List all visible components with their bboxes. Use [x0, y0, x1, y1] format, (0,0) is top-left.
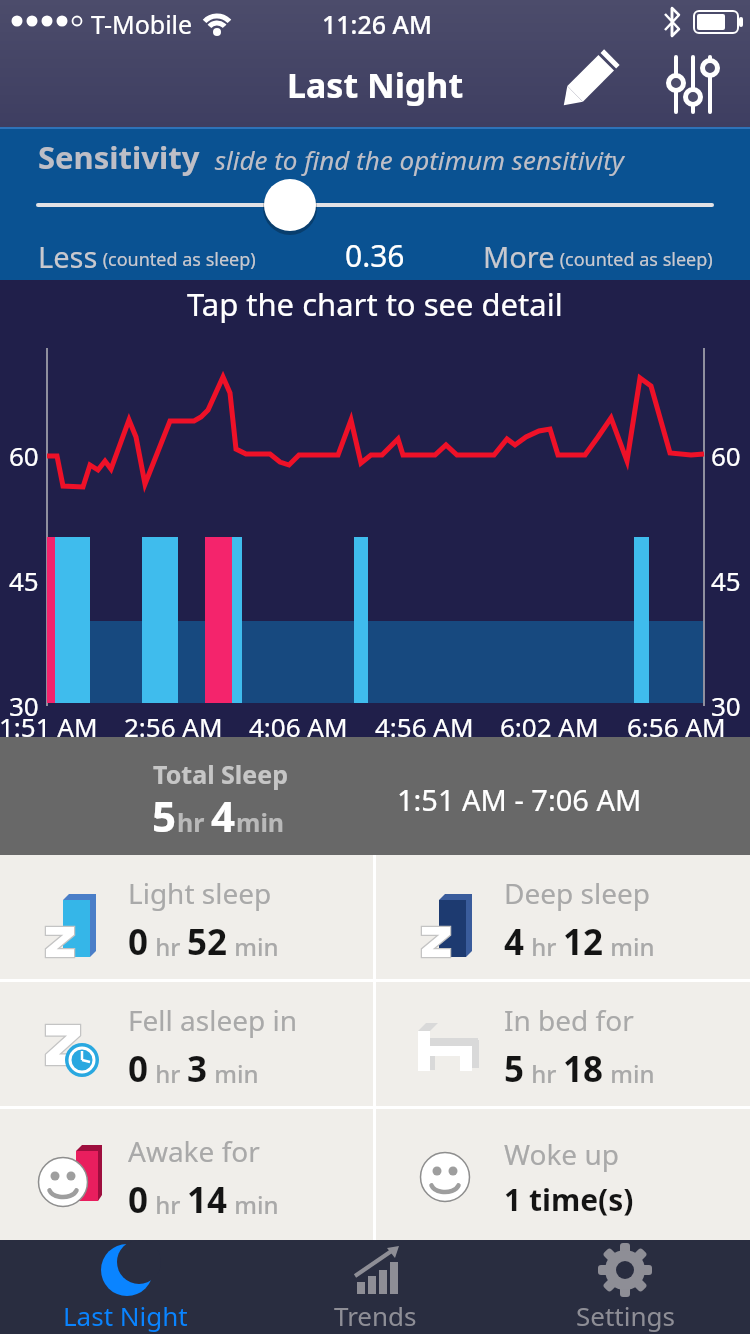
- staticText: 4:06 AM: [249, 709, 348, 744]
- staticText: 4:56 AM: [375, 709, 474, 744]
- staticText: 6:56 AM: [627, 709, 726, 744]
- button[interactable]: In bed for: [376, 982, 750, 1106]
- staticText: 5: [152, 787, 177, 844]
- staticText: min: [604, 1057, 655, 1090]
- staticText: hr: [525, 1057, 563, 1090]
- staticText: 4: [211, 787, 236, 844]
- staticText: Last Night: [63, 1298, 188, 1333]
- staticText: min: [228, 1188, 279, 1221]
- staticText: 14: [187, 1176, 228, 1224]
- staticText: (counted as sleep): [555, 247, 713, 272]
- staticText: Light sleep: [128, 874, 272, 912]
- staticText: Less: [38, 237, 98, 276]
- staticText: Tap the chart to see detail: [187, 283, 563, 325]
- staticText: 3: [187, 1045, 208, 1093]
- button[interactable]: Trends: [250, 1240, 500, 1334]
- staticText: 45: [711, 563, 741, 598]
- staticText: Last Night: [287, 62, 464, 108]
- staticText: 0: [128, 1045, 149, 1093]
- button[interactable]: Woke up: [376, 1109, 750, 1240]
- button[interactable]: Settings: [500, 1240, 750, 1334]
- button[interactable]: [665, 50, 725, 120]
- staticText: hr: [177, 805, 211, 839]
- staticText: 1:51 AM: [0, 709, 98, 744]
- staticText: 52: [187, 918, 228, 966]
- staticText: min: [228, 930, 279, 963]
- staticText: 60: [9, 438, 39, 473]
- button[interactable]: Awake for: [0, 1109, 373, 1240]
- staticText: 0.36: [345, 235, 405, 276]
- button[interactable]: [545, 55, 615, 115]
- staticText: Trends: [334, 1298, 417, 1333]
- staticText: min: [604, 930, 655, 963]
- staticText: hr: [149, 930, 187, 963]
- staticText: (counted as sleep): [98, 247, 256, 272]
- staticText: Awake for: [128, 1132, 260, 1170]
- staticText: T-Mobile: [91, 7, 193, 41]
- button[interactable]: Fell asleep in: [0, 982, 373, 1106]
- staticText: 30: [711, 688, 741, 723]
- staticText: 0: [128, 918, 149, 966]
- staticText: Woke up: [504, 1135, 619, 1173]
- button[interactable]: [240, 153, 340, 253]
- staticText: hr: [149, 1188, 187, 1221]
- button[interactable]: Light sleep: [0, 855, 373, 979]
- staticText: 0: [128, 1176, 149, 1224]
- staticText: 18: [563, 1045, 604, 1093]
- staticText: Fell asleep in: [128, 1001, 298, 1039]
- staticText: 1:51 AM - 7:06 AM: [397, 780, 642, 819]
- staticText: In bed for: [504, 1001, 634, 1039]
- staticText: slide to find the optimum sensitivity: [208, 142, 625, 177]
- staticText: Sensitivity: [38, 136, 200, 178]
- button[interactable]: Tap the chart to see detail: [0, 280, 750, 737]
- staticText: hr: [149, 1057, 187, 1090]
- staticText: 2:56 AM: [124, 709, 223, 744]
- staticText: 6:02 AM: [500, 709, 599, 744]
- button[interactable]: Last Night: [0, 1240, 250, 1334]
- staticText: 45: [9, 563, 39, 598]
- staticText: 11:26 AM: [322, 7, 432, 41]
- staticText: Settings: [576, 1298, 675, 1333]
- button[interactable]: Deep sleep: [376, 855, 750, 979]
- staticText: hr: [525, 930, 563, 963]
- staticText: min: [236, 805, 285, 839]
- staticText: 30: [9, 688, 39, 723]
- staticText: min: [208, 1057, 259, 1090]
- staticText: Deep sleep: [504, 874, 650, 912]
- staticText: 12: [563, 918, 604, 966]
- staticText: 1 time(s): [504, 1179, 634, 1220]
- staticText: Total Sleep: [153, 757, 288, 791]
- staticText: 60: [711, 438, 741, 473]
- staticText: More: [483, 237, 555, 276]
- staticText: 4: [504, 918, 525, 966]
- staticText: 5: [504, 1045, 525, 1093]
